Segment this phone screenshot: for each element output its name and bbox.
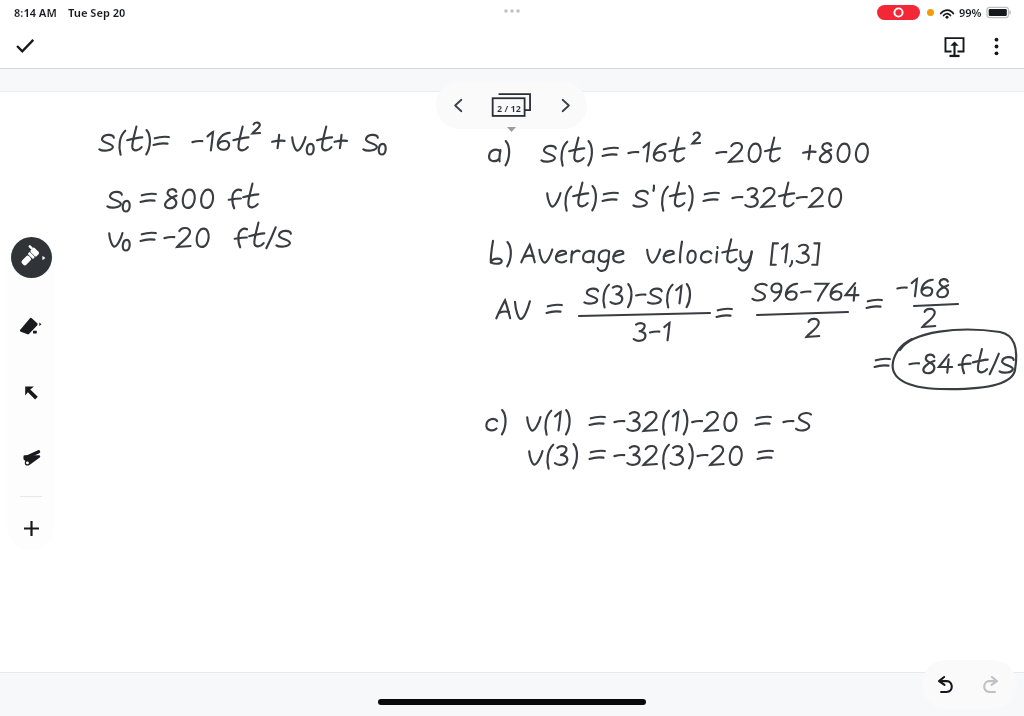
button[interactable]: More options [976,26,1016,66]
button[interactable]: Eraser [15,309,47,341]
staticText: 99% [959,5,982,20]
button[interactable]: Undo [922,660,967,709]
button[interactable]: Laser pointer [15,442,47,474]
staticText: 2 / 12 [497,102,521,114]
button[interactable]: Pen [11,237,52,278]
button[interactable]: Redo [967,660,1017,709]
button[interactable]: Add tool [19,516,43,540]
staticText: 8:14 AM [14,5,57,20]
button[interactable]: Done [8,29,42,63]
button[interactable]: Previous page [436,82,480,129]
button[interactable]: Select [15,376,47,408]
button[interactable]: Present to screen [934,26,974,66]
button[interactable]: Next page [543,82,587,129]
staticText: Tue Sep 20 [68,5,126,20]
